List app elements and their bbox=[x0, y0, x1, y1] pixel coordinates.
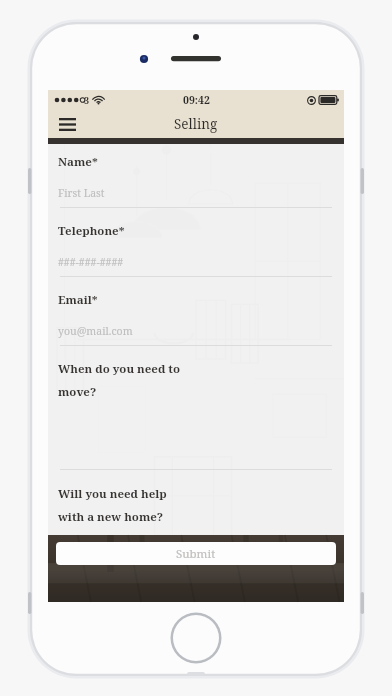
staticText: When do you need to bbox=[58, 361, 181, 377]
staticText: ###-###-#### bbox=[58, 255, 124, 269]
staticText: move? bbox=[58, 384, 97, 400]
staticText: First Last bbox=[58, 186, 105, 200]
staticText: 09:42 bbox=[183, 93, 210, 107]
button[interactable]: you@mail.com bbox=[58, 324, 334, 346]
staticText: Name* bbox=[58, 154, 98, 170]
staticText: 3 bbox=[84, 94, 90, 106]
button[interactable]: First Last bbox=[58, 186, 334, 208]
staticText: with a new home? bbox=[58, 509, 164, 525]
staticText: Email* bbox=[58, 292, 98, 308]
staticText: Will you need help bbox=[58, 486, 167, 502]
staticText: Submit bbox=[176, 546, 216, 562]
button[interactable]: Select option bbox=[58, 448, 334, 470]
button[interactable]: ###-###-#### bbox=[58, 255, 334, 277]
button[interactable]: Open navigation menu bbox=[52, 111, 82, 137]
staticText: you@mail.com bbox=[58, 324, 133, 338]
button[interactable]: Submit bbox=[56, 542, 336, 565]
staticText: Telephone* bbox=[58, 223, 125, 239]
staticText: Selling bbox=[174, 115, 218, 133]
